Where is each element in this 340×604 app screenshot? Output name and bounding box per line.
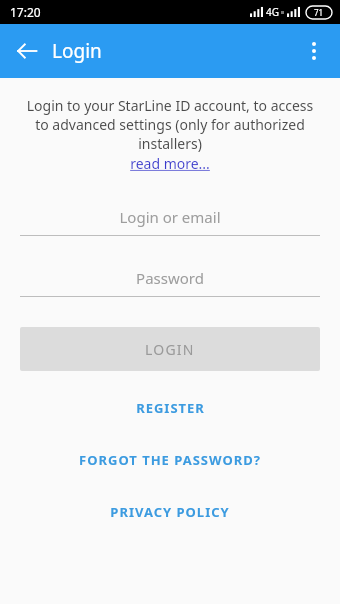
staticText: Login or email: [119, 207, 221, 227]
staticText: read more...: [130, 154, 210, 173]
staticText: LOGIN: [145, 340, 195, 359]
staticText: PRIVACY POLICY: [110, 503, 230, 521]
staticText: FORGOT THE PASSWORD?: [79, 451, 261, 469]
button[interactable]: More options: [292, 29, 336, 73]
button[interactable]: PRIVACY POLICY: [0, 495, 340, 529]
staticText: 4G: [266, 5, 279, 19]
button[interactable]: REGISTER: [0, 391, 340, 425]
button[interactable]: read more...: [0, 153, 340, 175]
staticText: Password: [136, 268, 204, 288]
button[interactable]: Password: [0, 260, 340, 296]
staticText: REGISTER: [136, 399, 205, 417]
button[interactable]: Back: [6, 30, 48, 72]
button[interactable]: FORGOT THE PASSWORD?: [0, 443, 340, 477]
staticText: Login: [52, 38, 102, 64]
button[interactable]: Login or email: [0, 199, 340, 235]
staticText: 71: [314, 7, 324, 18]
button[interactable]: LOGIN: [20, 327, 320, 371]
staticText: 17:20: [10, 4, 41, 20]
staticText: Login to your StarLine ID account, to ac…: [22, 96, 318, 153]
